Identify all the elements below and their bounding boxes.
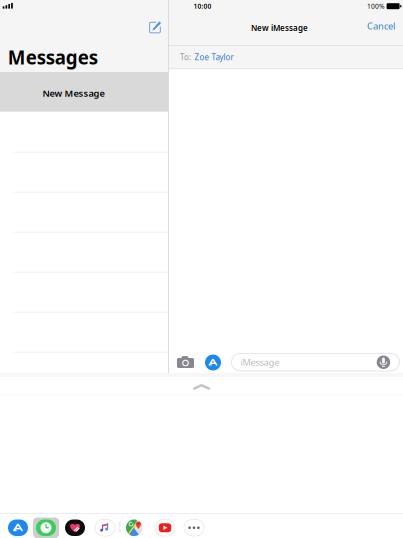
button[interactable]: Maps [126, 519, 142, 536]
button[interactable]: YouTube [155, 519, 175, 536]
staticText: Cancel [367, 20, 395, 32]
staticText: 10:00 [193, 2, 211, 11]
button[interactable]: Compose [144, 17, 166, 38]
button[interactable]: Apps [205, 354, 221, 370]
button[interactable]: Digital Touch [33, 517, 59, 538]
staticText: New Message [42, 87, 104, 99]
staticText: Zoe Taylor [195, 52, 234, 62]
button[interactable]: Music [95, 519, 115, 536]
button[interactable]: More [184, 519, 204, 536]
staticText: New iMessage [251, 23, 308, 33]
button[interactable]: New Message [0, 72, 168, 112]
staticText: 100% [367, 2, 385, 11]
staticText: iMessage [240, 356, 279, 368]
button[interactable]: Cancel [362, 17, 400, 35]
button[interactable]: iMessage [231, 353, 399, 371]
button[interactable]: Camera [177, 356, 194, 368]
button[interactable]: Fitness [65, 519, 85, 536]
staticText: To: [180, 52, 191, 62]
staticText: Messages [8, 45, 98, 70]
button[interactable]: Zoe Taylor [195, 52, 234, 62]
button[interactable]: App Store [8, 519, 28, 536]
